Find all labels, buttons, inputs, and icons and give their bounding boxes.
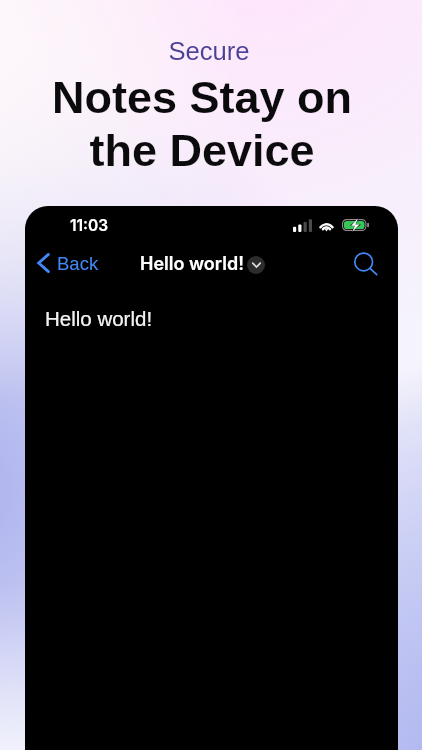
staticText: Secure	[0, 37, 420, 66]
button[interactable]: Search	[344, 242, 386, 286]
button[interactable]: Note options	[247, 256, 265, 274]
staticText: Back	[57, 253, 99, 274]
staticText: Notes Stay on the Device	[0, 72, 413, 176]
button[interactable]: Back	[30, 242, 108, 284]
staticText: Hello world!	[45, 307, 153, 330]
staticText: 11:03	[70, 216, 109, 235]
staticText: Hello world!	[140, 253, 244, 275]
